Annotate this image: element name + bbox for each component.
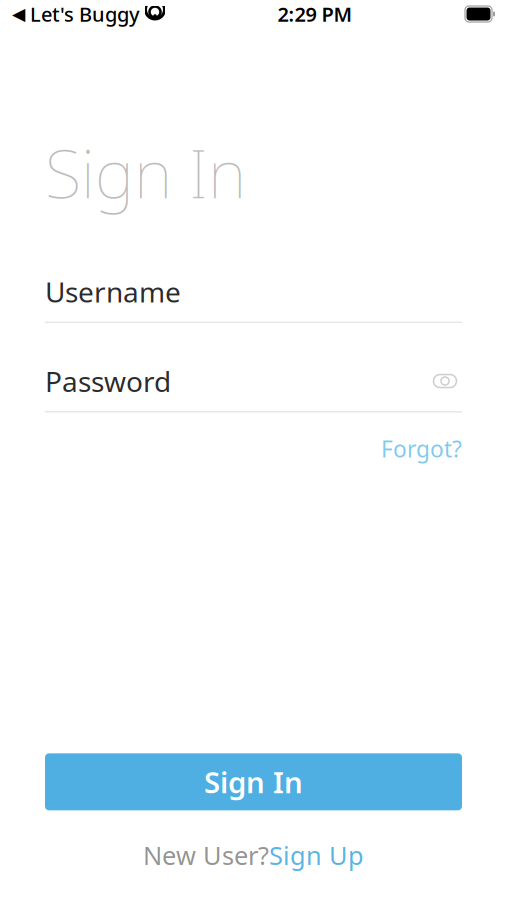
button[interactable]: Forgot? (381, 429, 462, 468)
staticText: Username (45, 273, 181, 310)
button[interactable]: Sign In (45, 753, 462, 810)
staticText: New User? (143, 838, 269, 872)
staticText: ◀ (12, 4, 25, 24)
staticText: Forgot? (381, 433, 462, 464)
staticText: 2:29 PM (277, 1, 352, 27)
button[interactable]: Show password (428, 364, 462, 398)
staticText: Sign In (45, 128, 246, 216)
staticText: Sign Up (269, 838, 364, 872)
button[interactable]: New User? (143, 832, 364, 878)
staticText: Let's Buggy (25, 1, 145, 27)
staticText: Sign In (204, 762, 303, 801)
staticText: Password (45, 362, 171, 400)
